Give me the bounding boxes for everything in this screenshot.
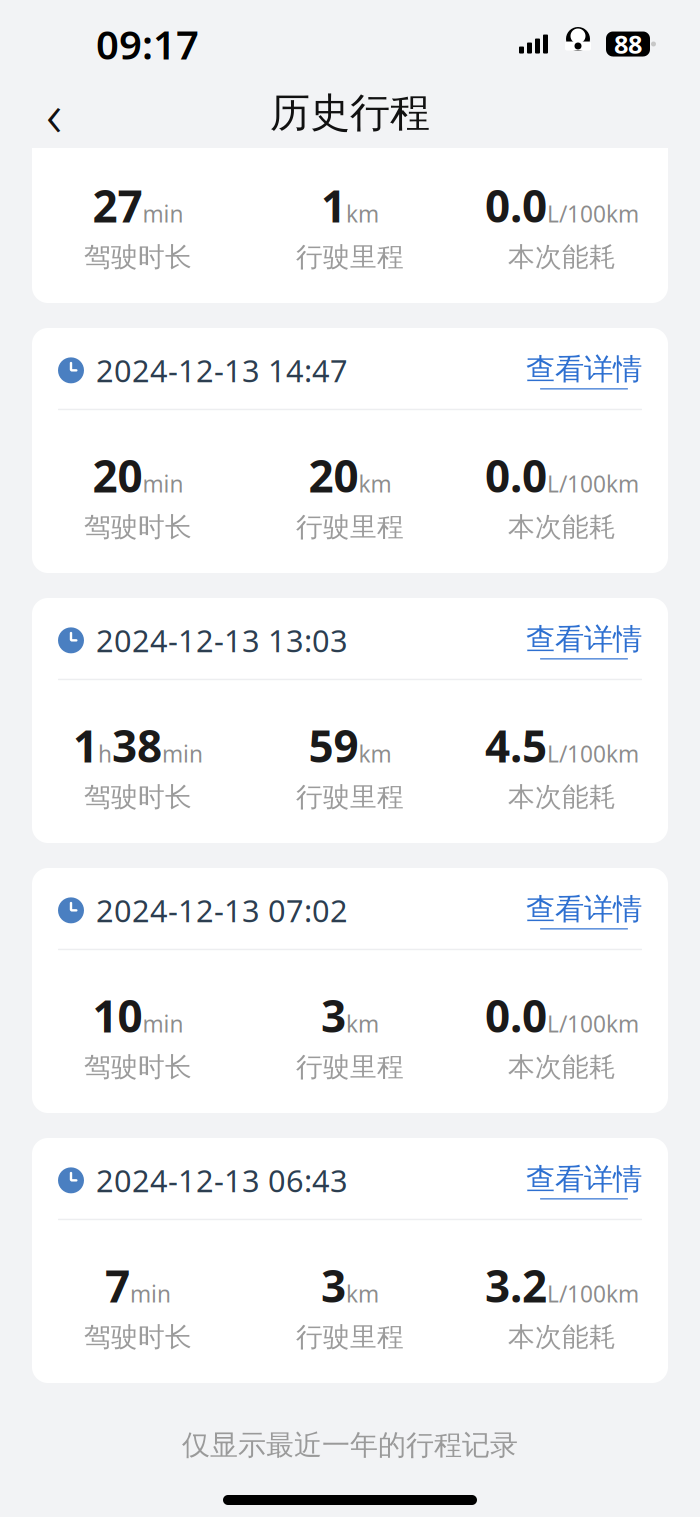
staticText: 驾驶时长 bbox=[84, 1321, 192, 1353]
staticText: 20 bbox=[92, 446, 142, 505]
staticText: 行驶里程 bbox=[296, 1051, 404, 1083]
staticText: 本次能耗 bbox=[508, 781, 616, 813]
staticText: 本次能耗 bbox=[508, 241, 616, 273]
staticText: min bbox=[130, 1279, 171, 1309]
button[interactable]: 2024-12-13 14:47 bbox=[32, 328, 668, 573]
button[interactable]: 2024-12-13 15:28 bbox=[32, 58, 668, 303]
staticText: L/100km bbox=[547, 739, 639, 769]
staticText: ‹ bbox=[46, 72, 62, 154]
staticText: 行驶里程 bbox=[296, 511, 404, 543]
staticText: km bbox=[346, 1009, 379, 1039]
staticText: 驾驶时长 bbox=[84, 1051, 192, 1083]
staticText: 3 bbox=[321, 1256, 346, 1315]
staticText: 1 bbox=[321, 176, 346, 235]
button[interactable]: 查看详情 bbox=[526, 621, 642, 659]
staticText: 7 bbox=[105, 1256, 130, 1315]
staticText: 09:17 bbox=[96, 17, 199, 70]
staticText: 0.0 bbox=[485, 176, 547, 235]
staticText: 仅显示最近一年的行程记录 bbox=[182, 1428, 518, 1462]
staticText: 2024-12-13 13:03 bbox=[96, 620, 348, 661]
staticText: min bbox=[142, 199, 183, 229]
staticText: 10 bbox=[92, 986, 142, 1045]
staticText: 0.0 bbox=[485, 986, 547, 1045]
staticText: 2024-12-13 06:43 bbox=[96, 1160, 348, 1201]
button[interactable]: 2024-12-13 13:03 bbox=[32, 598, 668, 843]
staticText: 1 bbox=[73, 716, 98, 775]
staticText: min bbox=[162, 739, 203, 769]
staticText: 3.2 bbox=[485, 1256, 547, 1315]
staticText: km bbox=[346, 1279, 379, 1309]
staticText: 驾驶时长 bbox=[84, 781, 192, 813]
staticText: 38 bbox=[112, 716, 162, 775]
staticText: 行驶里程 bbox=[296, 1321, 404, 1353]
staticText: 59 bbox=[308, 716, 358, 775]
staticText: L/100km bbox=[547, 1009, 639, 1039]
staticText: 88 bbox=[614, 27, 642, 61]
staticText: 0.0 bbox=[485, 446, 547, 505]
staticText: h bbox=[98, 739, 112, 769]
staticText: 历史行程 bbox=[270, 88, 430, 137]
button[interactable]: 查看详情 bbox=[526, 351, 642, 389]
staticText: 2024-12-13 07:02 bbox=[96, 890, 348, 931]
staticText: 查看详情 bbox=[526, 891, 642, 927]
staticText: min bbox=[142, 469, 183, 499]
staticText: 4.5 bbox=[485, 716, 547, 775]
staticText: 查看详情 bbox=[526, 1161, 642, 1197]
staticText: 行驶里程 bbox=[296, 241, 404, 273]
staticText: 驾驶时长 bbox=[84, 241, 192, 273]
button[interactable]: 查看详情 bbox=[526, 891, 642, 929]
staticText: L/100km bbox=[547, 199, 639, 229]
staticText: 20 bbox=[308, 446, 358, 505]
staticText: 查看详情 bbox=[526, 621, 642, 657]
staticText: 查看详情 bbox=[526, 351, 642, 387]
button[interactable]: 2024-12-13 06:43 bbox=[32, 1138, 668, 1383]
button[interactable]: 2024-12-13 07:02 bbox=[32, 868, 668, 1113]
staticText: 本次能耗 bbox=[508, 1051, 616, 1083]
staticText: 2024-12-13 14:47 bbox=[96, 350, 348, 391]
staticText: km bbox=[346, 199, 379, 229]
staticText: L/100km bbox=[547, 1279, 639, 1309]
staticText: 行驶里程 bbox=[296, 781, 404, 813]
staticText: km bbox=[358, 469, 391, 499]
staticText: 2024-12-13 15:28 bbox=[96, 80, 348, 121]
staticText: km bbox=[358, 739, 391, 769]
staticText: 驾驶时长 bbox=[84, 511, 192, 543]
staticText: 3 bbox=[321, 986, 346, 1045]
button[interactable]: 查看详情 bbox=[526, 1161, 642, 1199]
button[interactable]: 返回 bbox=[26, 85, 82, 141]
staticText: 27 bbox=[92, 176, 142, 235]
staticText: 本次能耗 bbox=[508, 511, 616, 543]
staticText: min bbox=[142, 1009, 183, 1039]
staticText: L/100km bbox=[547, 469, 639, 499]
staticText: 本次能耗 bbox=[508, 1321, 616, 1353]
